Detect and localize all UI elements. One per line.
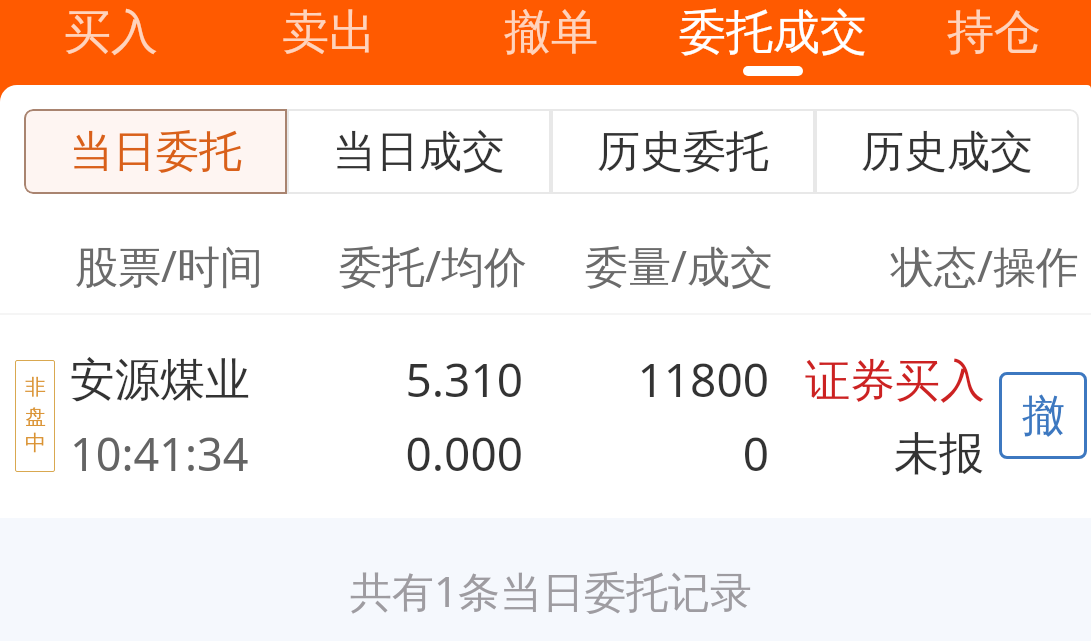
button[interactable]: 历史委托	[551, 109, 815, 194]
button[interactable]: 买入	[49, 0, 173, 85]
staticText: 卖出	[282, 3, 376, 62]
button[interactable]: 撤单	[489, 0, 613, 85]
staticText: 委托/均价	[339, 236, 527, 295]
staticText: 买入	[64, 3, 158, 62]
staticText: 当日委托	[70, 125, 242, 179]
staticText: 历史委托	[597, 125, 769, 179]
staticText: 共有1条当日委托记录	[350, 562, 753, 619]
staticText: 安源煤业	[70, 352, 250, 409]
staticText: 0.000	[0, 422, 523, 485]
button[interactable]: 当日成交	[287, 109, 551, 194]
staticText: 11800	[0, 348, 769, 411]
staticText: 历史成交	[861, 125, 1033, 179]
staticText: 非	[25, 374, 46, 400]
button[interactable]: 历史成交	[815, 109, 1079, 194]
staticText: 中	[25, 430, 46, 456]
staticText: 持仓	[947, 3, 1041, 62]
staticText: 5.310	[0, 348, 523, 411]
staticText: 盘	[25, 404, 46, 430]
staticText: 股票/时间	[75, 236, 263, 295]
staticText: 证券买入	[0, 353, 985, 410]
staticText: 撤单	[504, 3, 598, 62]
staticText: 状态/操作	[891, 236, 1079, 295]
staticText: 0	[0, 422, 769, 485]
staticText: 委托成交	[679, 3, 867, 62]
staticText: 当日成交	[333, 125, 505, 179]
button[interactable]: 委托成交	[664, 0, 882, 85]
staticText: 未报	[0, 426, 984, 483]
button[interactable]: 撤单 Cancel order	[999, 372, 1087, 459]
button[interactable]: 当日委托	[24, 109, 287, 194]
staticText: 委量/成交	[585, 236, 773, 295]
button[interactable]: 非	[0, 314, 1091, 518]
button[interactable]: 卖出	[267, 0, 391, 85]
staticText: 撤	[1022, 389, 1065, 443]
staticText: 10:41:34	[70, 423, 249, 484]
button[interactable]: 持仓	[932, 0, 1056, 85]
